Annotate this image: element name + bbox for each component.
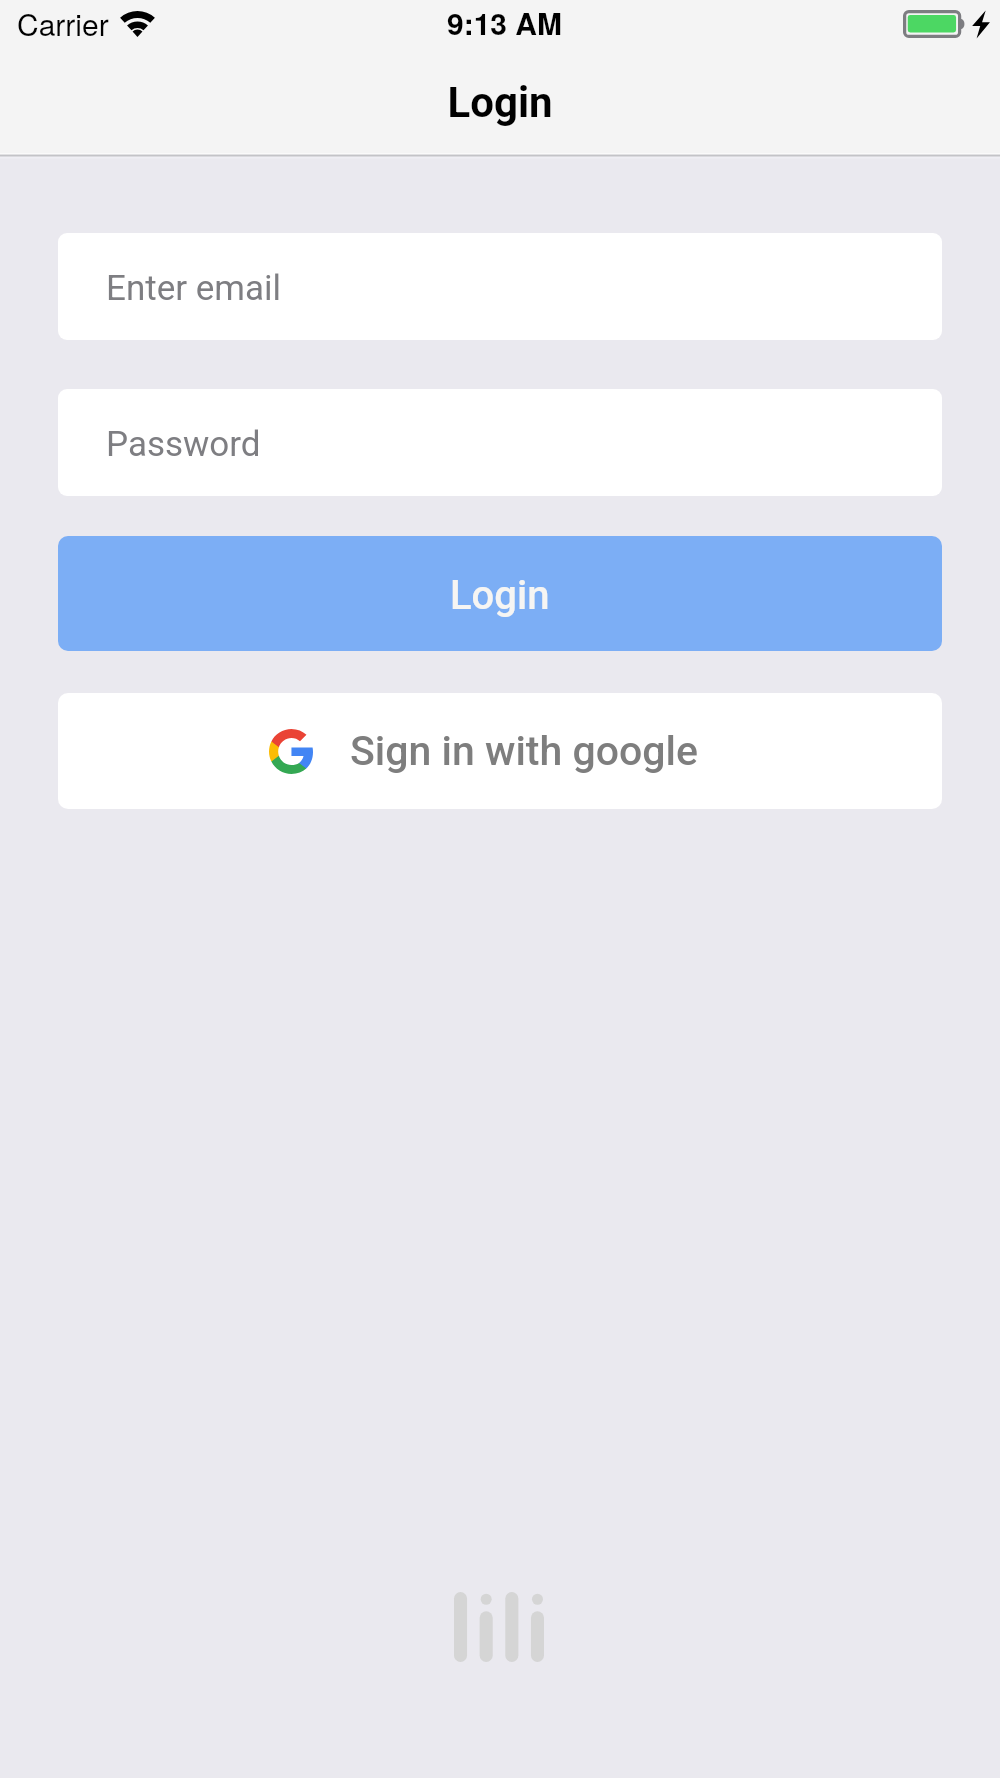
staticText: 9:13 AM [447,1,563,44]
staticText: Enter email [106,268,282,309]
staticText: Password [106,424,261,465]
other: Google logo [269,729,313,774]
button[interactable]: Password [58,389,942,496]
other: Battery charging [903,10,989,38]
staticText: Login [0,78,1000,127]
staticText: Login [450,572,550,619]
button[interactable]: Google logo [58,693,942,809]
button[interactable]: Enter email [58,233,942,340]
other: Wi-Fi signal [120,11,155,37]
staticText: Carrier [17,2,109,45]
staticText: Sign in with google [350,727,698,775]
other: lili [454,1592,544,1662]
button[interactable]: Login [58,536,942,651]
